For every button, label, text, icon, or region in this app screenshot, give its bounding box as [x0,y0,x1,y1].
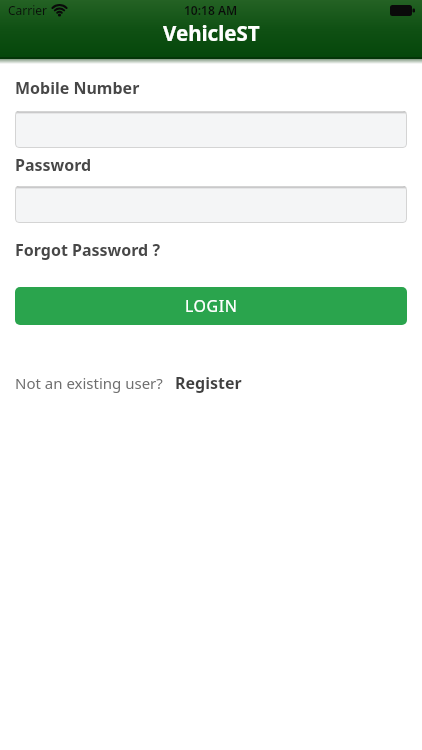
staticText: LOGIN [185,295,238,317]
button[interactable]: Forgot Password ? [15,239,161,261]
staticText: Password [15,154,92,176]
staticText: Mobile Number [15,77,140,99]
staticText: Not an existing user? [15,373,163,393]
staticText: 10:18 AM [184,2,238,18]
button[interactable]: LOGIN [15,287,407,325]
staticText: VehicleST [163,19,260,47]
button[interactable]: Register [175,372,242,394]
staticText: Carrier [8,2,48,18]
